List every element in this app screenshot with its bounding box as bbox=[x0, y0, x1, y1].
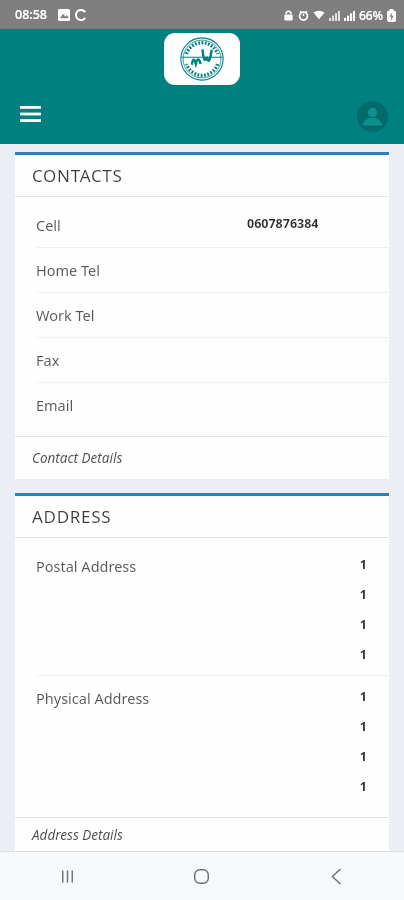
button[interactable]: Email bbox=[15, 383, 389, 427]
staticText: 1 bbox=[359, 556, 367, 573]
button[interactable]: Open navigation menu bbox=[8, 92, 52, 136]
button[interactable]: Recent apps bbox=[0, 852, 134, 900]
staticText: 1 bbox=[359, 748, 367, 765]
staticText: 08:58 bbox=[15, 6, 48, 23]
staticText: 1 bbox=[359, 616, 367, 633]
button[interactable]: Work Tel bbox=[15, 293, 389, 338]
staticText: Address Details bbox=[32, 826, 123, 844]
staticText: Postal Address bbox=[36, 556, 137, 576]
staticText: Physical Address bbox=[36, 688, 150, 708]
staticText: 1 bbox=[359, 646, 367, 663]
staticText: ADDRESS bbox=[32, 505, 112, 528]
staticText: 1 bbox=[359, 778, 367, 795]
staticText: 1 bbox=[359, 586, 367, 603]
staticText: 0607876384 bbox=[247, 215, 319, 232]
staticText: Work Tel bbox=[36, 305, 95, 325]
button[interactable]: Home bbox=[134, 852, 269, 900]
button[interactable]: Contact Details bbox=[15, 437, 389, 479]
button[interactable]: Cell bbox=[15, 203, 389, 248]
button[interactable]: Physical Address bbox=[15, 676, 389, 807]
staticText: 1 bbox=[359, 718, 367, 735]
staticText: Email bbox=[36, 395, 74, 415]
staticText: Cell bbox=[36, 215, 61, 235]
staticText: Fax bbox=[36, 350, 60, 370]
staticText: Home Tel bbox=[36, 260, 100, 280]
button[interactable]: Postal Address bbox=[15, 544, 389, 676]
button[interactable]: Account bbox=[350, 94, 394, 138]
staticText: Contact Details bbox=[32, 449, 123, 467]
button[interactable]: App logo, go home bbox=[164, 33, 240, 85]
staticText: CONTACTS bbox=[32, 164, 123, 187]
button[interactable]: Fax bbox=[15, 338, 389, 383]
button[interactable]: Back bbox=[269, 852, 404, 900]
button[interactable]: Home Tel bbox=[15, 248, 389, 293]
staticText: 66% bbox=[359, 7, 383, 23]
staticText: 1 bbox=[359, 688, 367, 705]
button[interactable]: Address Details bbox=[15, 818, 389, 851]
